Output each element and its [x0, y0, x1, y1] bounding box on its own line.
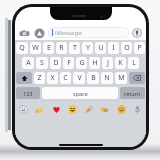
- staticText: M: [118, 73, 125, 83]
- button[interactable]: Heart: [51, 104, 62, 115]
- staticText: T: [73, 43, 77, 53]
- staticText: space: [73, 90, 88, 97]
- staticText: B: [91, 73, 96, 83]
- button[interactable]: Apps: [33, 27, 45, 39]
- button[interactable]: Camera: [18, 27, 30, 39]
- button[interactable]: J: [102, 57, 113, 69]
- button[interactable]: A: [22, 57, 34, 69]
- button[interactable]: I: [108, 42, 119, 54]
- staticText: O: [124, 43, 130, 53]
- staticText: K: [118, 58, 123, 68]
- staticText: C: [63, 73, 68, 83]
- button[interactable]: 123: [16, 87, 40, 99]
- button[interactable]: X: [47, 72, 58, 84]
- button[interactable]: Dictation: [132, 104, 143, 115]
- button[interactable]: Emoji keyboard: [18, 104, 29, 115]
- button[interactable]: Smiling face: [116, 104, 127, 115]
- staticText: return: [124, 90, 141, 97]
- button[interactable]: U: [95, 42, 106, 54]
- staticText: I: [112, 43, 115, 53]
- staticText: L: [132, 58, 136, 68]
- button[interactable]: L: [128, 57, 139, 69]
- staticText: U: [98, 43, 104, 53]
- button[interactable]: P: [134, 42, 145, 54]
- button[interactable]: T: [69, 42, 80, 54]
- staticText: Q: [19, 43, 25, 53]
- button[interactable]: R: [56, 42, 67, 54]
- button[interactable]: Laughing face: [67, 104, 78, 115]
- staticText: E: [47, 43, 51, 53]
- button[interactable]: D: [50, 57, 61, 69]
- button[interactable]: N: [101, 72, 113, 84]
- button[interactable]: M: [115, 72, 127, 84]
- staticText: W: [32, 43, 39, 53]
- staticText: V: [77, 73, 82, 83]
- button[interactable]: Thumbs up: [34, 104, 45, 115]
- button[interactable]: Clapping hands: [99, 104, 110, 115]
- button[interactable]: C: [60, 72, 71, 84]
- staticText: P: [137, 43, 142, 53]
- staticText: H: [92, 58, 98, 68]
- button[interactable]: Party popper: [83, 104, 94, 115]
- button[interactable]: Y: [82, 42, 93, 54]
- button[interactable]: E: [43, 42, 54, 54]
- staticText: F: [67, 58, 71, 68]
- staticText: N: [104, 73, 110, 83]
- button[interactable]: return: [120, 87, 145, 99]
- staticText: D: [53, 58, 59, 68]
- button[interactable]: Backspace: [129, 72, 145, 84]
- button[interactable]: Record audio: [132, 28, 142, 38]
- staticText: iMessage: [55, 29, 82, 37]
- staticText: X: [50, 73, 55, 83]
- button[interactable]: V: [73, 72, 85, 84]
- staticText: 123: [23, 90, 33, 97]
- button[interactable]: G: [76, 57, 87, 69]
- staticText: Y: [86, 43, 90, 53]
- button[interactable]: Q: [16, 42, 28, 54]
- button[interactable]: H: [89, 57, 100, 69]
- button[interactable]: K: [115, 57, 126, 69]
- button[interactable]: Z: [34, 72, 45, 84]
- button[interactable]: Shift: [16, 72, 32, 84]
- staticText: J: [107, 58, 109, 68]
- button[interactable]: W: [30, 42, 41, 54]
- staticText: A: [26, 58, 31, 68]
- staticText: Z: [37, 73, 42, 83]
- staticText: G: [79, 58, 85, 68]
- button[interactable]: O: [121, 42, 132, 54]
- staticText: R: [59, 43, 64, 53]
- button[interactable]: S: [36, 57, 48, 69]
- button[interactable]: iMessage: [48, 27, 129, 38]
- button[interactable]: F: [63, 57, 74, 69]
- button[interactable]: B: [87, 72, 99, 84]
- button[interactable]: space: [42, 87, 118, 99]
- staticText: S: [40, 58, 44, 68]
